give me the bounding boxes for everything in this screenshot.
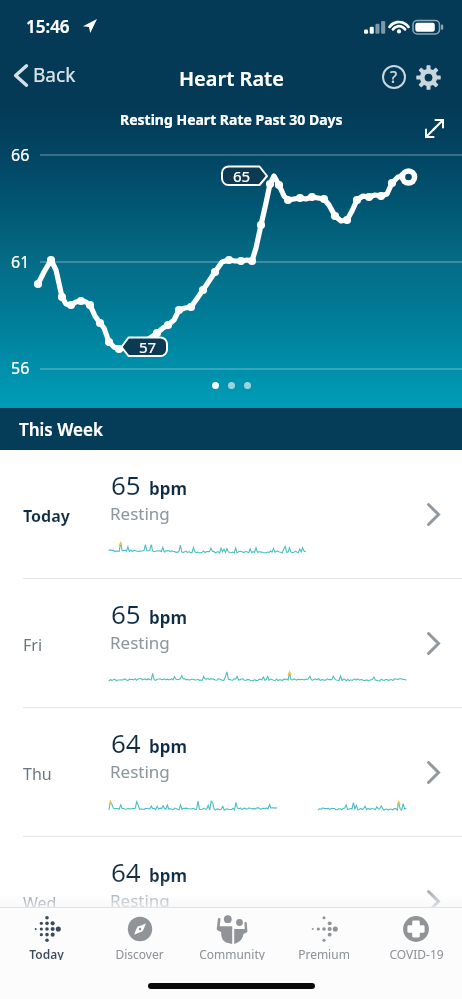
button[interactable]: Expand — [414, 108, 454, 148]
staticText: ? — [390, 66, 398, 88]
button[interactable]: Wed — [0, 837, 462, 965]
button[interactable]: Community — [186, 908, 278, 960]
button[interactable]: Help — [377, 60, 411, 94]
staticText: 65 — [111, 467, 141, 502]
staticText: Resting — [110, 502, 170, 525]
staticText: Fri — [23, 634, 43, 656]
staticText: Resting — [110, 631, 170, 654]
staticText: Resting Heart Rate Past 30 Days — [120, 110, 343, 129]
button[interactable]: Premium — [278, 908, 370, 960]
staticText: This Week — [19, 418, 103, 441]
button[interactable]: Back — [0, 58, 88, 92]
staticText: Discover — [115, 946, 164, 960]
button[interactable]: Today — [0, 450, 462, 578]
button[interactable]: Today — [0, 908, 93, 960]
staticText: Today — [23, 505, 70, 527]
staticText: bpm — [149, 735, 188, 758]
staticText: 65 — [233, 166, 251, 186]
staticText: 66 — [11, 144, 30, 166]
staticText: 65 — [111, 596, 141, 631]
staticText: Heart Rate — [179, 65, 284, 92]
staticText: bpm — [149, 477, 188, 500]
staticText: 57 — [139, 337, 157, 357]
staticText: Premium — [298, 946, 350, 960]
staticText: 56 — [11, 357, 30, 379]
staticText: 64 — [111, 854, 141, 889]
staticText: bpm — [149, 606, 188, 629]
button[interactable]: Thu — [0, 708, 462, 836]
staticText: bpm — [149, 864, 188, 887]
staticText: Resting — [110, 889, 170, 912]
button[interactable]: Fri — [0, 579, 462, 707]
staticText: Today — [29, 946, 64, 960]
staticText: Thu — [23, 763, 52, 785]
staticText: Community — [199, 946, 265, 960]
staticText: Resting — [110, 760, 170, 783]
staticText: Wed — [23, 892, 57, 914]
button[interactable]: Settings — [411, 60, 445, 94]
staticText: 64 — [111, 725, 141, 760]
staticText: 61 — [11, 251, 30, 273]
staticText: 15:46 — [26, 15, 70, 38]
staticText: Back — [33, 62, 76, 88]
button[interactable]: Discover — [93, 908, 186, 960]
button[interactable]: COVID-19 — [370, 908, 462, 960]
staticText: COVID-19 — [389, 946, 444, 960]
